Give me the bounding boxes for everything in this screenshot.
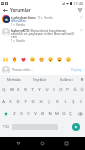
- button[interactable]: E: [15, 84, 22, 96]
- button[interactable]: Back: [13, 138, 24, 149]
- button[interactable]: K: [53, 96, 61, 108]
- button[interactable]: Reaction: [46, 55, 55, 64]
- button[interactable]: N: [46, 108, 53, 120]
- staticText: E: [17, 87, 20, 93]
- staticText: Kullanıcı: [60, 78, 73, 82]
- button[interactable]: Like: [79, 28, 84, 33]
- button[interactable]: Share: [76, 6, 84, 14]
- staticText: P: [66, 87, 69, 93]
- staticText: T: [31, 87, 34, 93]
- staticText: F: [24, 99, 27, 105]
- button[interactable]: A: [0, 96, 7, 108]
- button[interactable]: hakemKTD Bonushost hazırlanan, etkinlik …: [0, 27, 85, 43]
- button[interactable]: J: [45, 96, 53, 108]
- button[interactable]: Q: [0, 84, 8, 96]
- button[interactable]: P: [64, 84, 71, 96]
- staticText: hakemKTD Bonushost hazırlanan, etkinlik …: [11, 28, 75, 39]
- button[interactable]: Reaction: [19, 55, 28, 64]
- staticText: J: [48, 99, 50, 105]
- button[interactable]: B: [39, 108, 46, 120]
- button[interactable]: Ü: [78, 84, 85, 96]
- button[interactable]: S: [7, 96, 14, 108]
- staticText: L: [64, 99, 67, 105]
- button[interactable]: Paylaş: [70, 66, 83, 73]
- button[interactable]: F: [21, 96, 29, 108]
- button[interactable]: Yanıtla: [16, 23, 25, 27]
- staticText: R: [24, 87, 27, 93]
- staticText: Q: [2, 87, 6, 93]
- staticText: A: [2, 99, 5, 105]
- staticText: Yorumlar: [10, 7, 31, 13]
- button[interactable]: Y: [36, 84, 43, 96]
- button[interactable]: Recents: [61, 138, 72, 149]
- button[interactable]: Like: [79, 15, 84, 20]
- staticText: .: [62, 124, 63, 129]
- staticText: D: [16, 99, 20, 105]
- staticText: Ğ: [73, 87, 77, 93]
- staticText: O: [59, 87, 63, 93]
- button[interactable]: Ö: [60, 108, 67, 120]
- button[interactable]: ?123: [0, 120, 12, 133]
- staticText: K: [56, 99, 59, 105]
- button[interactable]: Ğ: [71, 84, 78, 96]
- staticText: U: [45, 87, 49, 93]
- staticText: G: [31, 99, 35, 105]
- button[interactable]: turkishairlines 17 s Yanıtla #BeyMaz: [0, 14, 85, 27]
- button[interactable]: Shift: [0, 108, 11, 120]
- button[interactable]: Teşekkür: [27, 75, 53, 84]
- button[interactable]: Backspace: [74, 108, 85, 120]
- staticText: turkishairlines 17 s Yanıtla #BeyMaz: [11, 15, 53, 23]
- button[interactable]: Ş: [69, 96, 77, 108]
- button[interactable]: O: [57, 84, 64, 96]
- button[interactable]: T: [29, 84, 36, 96]
- button[interactable]: Reaction: [55, 55, 64, 64]
- button[interactable]: Home: [37, 138, 48, 149]
- button[interactable]: X: [18, 108, 25, 120]
- button[interactable]: D: [14, 96, 21, 108]
- staticText: 17:40: [73, 1, 84, 6]
- staticText: Ü: [80, 87, 84, 93]
- button[interactable]: G: [29, 96, 37, 108]
- button[interactable]: Yanıtla: [16, 39, 25, 43]
- staticText: X: [20, 111, 23, 117]
- button[interactable]: I: [50, 84, 57, 96]
- button[interactable]: V: [32, 108, 39, 120]
- button[interactable]: M: [53, 108, 60, 120]
- button[interactable]: Reaction: [37, 55, 46, 64]
- staticText: V: [34, 111, 37, 117]
- button[interactable]: Kullanıcı: [53, 75, 79, 84]
- button[interactable]: W: [8, 84, 15, 96]
- button[interactable]: L: [61, 96, 69, 108]
- staticText: N: [48, 111, 52, 117]
- staticText: Teşekkür: [33, 78, 47, 82]
- button[interactable]: Send: [67, 120, 85, 133]
- staticText: S: [9, 99, 12, 105]
- staticText: Ö: [62, 111, 66, 117]
- staticText: H: [39, 99, 43, 105]
- staticText: Z: [13, 111, 16, 117]
- button[interactable]: C: [25, 108, 32, 120]
- button[interactable]: Ç: [67, 108, 74, 120]
- button[interactable]: H: [37, 96, 45, 108]
- button[interactable]: Merhaba: [0, 75, 27, 84]
- staticText: Ş: [72, 99, 75, 105]
- button[interactable]: R: [22, 84, 29, 96]
- button[interactable]: Reaction: [10, 55, 19, 64]
- button[interactable]: U: [43, 84, 50, 96]
- staticText: 1 s: [11, 39, 15, 43]
- button[interactable]: Voice input: [79, 75, 85, 84]
- button[interactable]: Reaction: [28, 55, 37, 64]
- button[interactable]: Reaction: [64, 55, 73, 64]
- staticText: C: [27, 111, 30, 117]
- staticText: 1 s: [11, 23, 15, 27]
- button[interactable]: Back: [1, 6, 9, 14]
- staticText: ?123: [3, 125, 9, 129]
- button[interactable]: I: [77, 96, 85, 108]
- staticText: Merhaba: [7, 78, 21, 82]
- staticText: I: [53, 87, 55, 93]
- button[interactable]: Z: [11, 108, 18, 120]
- button[interactable]: Reaction: [1, 55, 10, 64]
- staticText: W: [10, 87, 14, 93]
